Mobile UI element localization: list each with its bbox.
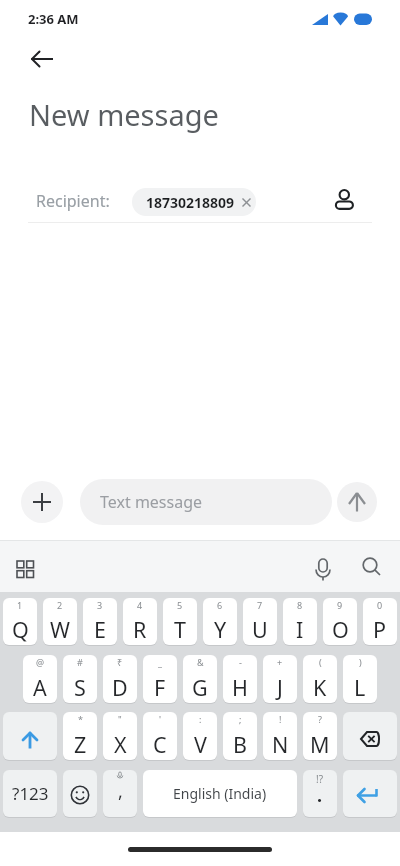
button[interactable]: + xyxy=(263,655,297,703)
button[interactable]: 18730218809 xyxy=(132,188,256,216)
staticText: * xyxy=(78,713,83,725)
button[interactable]: English (India) xyxy=(143,770,297,817)
staticText: ! xyxy=(279,713,282,725)
button[interactable]: 4 xyxy=(123,598,157,645)
staticText: # xyxy=(77,656,83,668)
staticText: D xyxy=(112,673,128,702)
button[interactable] xyxy=(63,770,97,817)
button[interactable]: @ xyxy=(23,655,57,703)
button[interactable] xyxy=(22,44,62,74)
staticText: N xyxy=(272,730,289,759)
button[interactable]: 0 xyxy=(363,598,397,645)
staticText: W xyxy=(50,615,70,644)
staticText: A xyxy=(33,673,47,702)
staticText: K xyxy=(313,673,327,702)
staticText: Text message xyxy=(100,491,203,513)
staticText: 4 xyxy=(137,599,143,611)
button[interactable]: Text message xyxy=(80,479,332,525)
staticText: ) xyxy=(359,656,362,668)
button[interactable]: 3 xyxy=(83,598,117,645)
staticText: . xyxy=(317,783,323,808)
staticText: L xyxy=(354,673,366,702)
staticText: & xyxy=(197,656,204,668)
button[interactable]: - xyxy=(223,655,257,703)
button[interactable]: 8 xyxy=(283,598,317,645)
button[interactable] xyxy=(343,712,397,760)
staticText: English (India) xyxy=(173,784,267,803)
button[interactable]: 9 xyxy=(323,598,357,645)
button[interactable] xyxy=(11,555,39,583)
button[interactable]: 2 xyxy=(43,598,77,645)
staticText: ? xyxy=(318,713,322,725)
button[interactable]: ( xyxy=(303,655,337,703)
button[interactable]: : xyxy=(183,712,217,760)
button[interactable]: !? xyxy=(303,770,337,817)
button[interactable]: # xyxy=(63,655,97,703)
staticText: ( xyxy=(319,656,322,668)
button[interactable]: * xyxy=(63,712,97,760)
staticText: V xyxy=(194,730,207,759)
button[interactable]: " xyxy=(103,712,137,760)
staticText: , xyxy=(118,779,123,804)
staticText: - xyxy=(239,656,242,668)
staticText: G xyxy=(192,673,208,702)
button[interactable] xyxy=(21,481,63,523)
staticText: 2 xyxy=(57,599,63,611)
button[interactable]: ! xyxy=(263,712,297,760)
staticText: 8 xyxy=(297,599,303,611)
staticText: H xyxy=(232,673,248,702)
staticText: New message xyxy=(29,95,219,134)
button[interactable] xyxy=(337,482,377,522)
staticText: Recipient: xyxy=(36,190,110,212)
staticText: O xyxy=(332,615,349,644)
button[interactable]: ?123 xyxy=(3,770,57,817)
staticText: ₹ xyxy=(117,656,123,668)
button[interactable]: & xyxy=(183,655,217,703)
staticText: 2:36 AM xyxy=(28,10,79,28)
staticText: !? xyxy=(316,772,324,786)
staticText: E xyxy=(94,615,106,644)
staticText: M xyxy=(310,730,330,759)
staticText: Z xyxy=(74,730,87,759)
button[interactable]: 6 xyxy=(203,598,237,645)
staticText: U xyxy=(252,615,268,644)
staticText: ' xyxy=(159,713,162,725)
button[interactable]: 5 xyxy=(163,598,197,645)
staticText: ; xyxy=(239,713,242,725)
staticText: 3 xyxy=(97,599,103,611)
staticText: 18730218809 xyxy=(146,193,235,212)
staticText: R xyxy=(133,615,147,644)
staticText: X xyxy=(114,730,127,759)
staticText: + xyxy=(277,656,283,668)
staticText: C xyxy=(153,730,167,759)
staticText: 7 xyxy=(257,599,263,611)
staticText: I xyxy=(296,615,304,644)
staticText: 9 xyxy=(337,599,343,611)
staticText: " xyxy=(118,713,122,725)
staticText: ?123 xyxy=(12,782,49,805)
button[interactable]: ; xyxy=(223,712,257,760)
button[interactable]: ₹ xyxy=(103,655,137,703)
staticText: P xyxy=(373,615,387,644)
staticText: S xyxy=(74,673,86,702)
button[interactable]: 7 xyxy=(243,598,277,645)
button[interactable]: , xyxy=(103,770,137,817)
button[interactable]: ' xyxy=(143,712,177,760)
button[interactable]: ) xyxy=(343,655,377,703)
staticText: 6 xyxy=(217,599,223,611)
button[interactable] xyxy=(305,550,341,586)
staticText: F xyxy=(154,673,166,702)
button[interactable] xyxy=(3,712,57,760)
staticText: _ xyxy=(158,656,162,668)
staticText: T xyxy=(174,615,186,644)
button[interactable]: ? xyxy=(303,712,337,760)
button[interactable] xyxy=(352,550,388,586)
staticText: : xyxy=(199,713,202,725)
button[interactable] xyxy=(330,182,362,214)
staticText: Q xyxy=(12,615,29,644)
staticText: B xyxy=(233,730,247,759)
staticText: Y xyxy=(214,615,227,644)
button[interactable]: _ xyxy=(143,655,177,703)
button[interactable]: 1 xyxy=(3,598,37,645)
button[interactable] xyxy=(343,770,397,817)
